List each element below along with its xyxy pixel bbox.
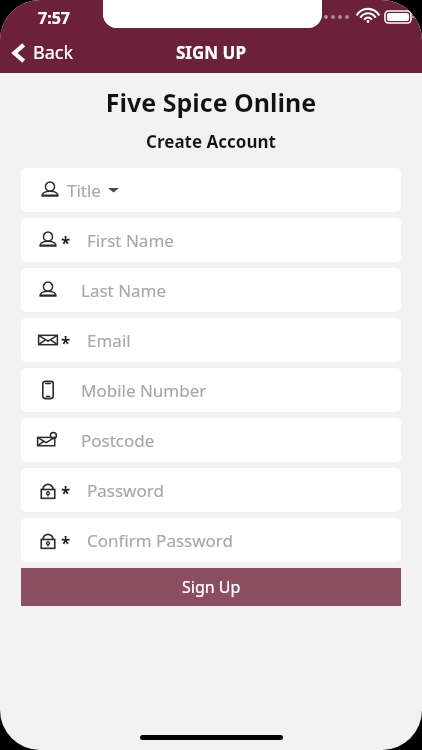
staticText: * — [61, 482, 71, 505]
button[interactable]: Mobile Number — [21, 368, 401, 412]
button[interactable]: * — [21, 218, 401, 262]
staticText: Email — [87, 329, 131, 352]
button[interactable]: Back — [8, 38, 78, 67]
button[interactable]: Title — [21, 168, 401, 212]
staticText: Last Name — [81, 279, 167, 302]
staticText: First Name — [87, 229, 174, 252]
staticText: * — [61, 232, 71, 255]
button[interactable]: * — [21, 318, 401, 362]
staticText: * — [61, 532, 71, 555]
staticText: Mobile Number — [81, 379, 207, 402]
staticText: Back — [33, 40, 74, 65]
staticText: Sign Up — [182, 576, 241, 598]
button[interactable]: Sign Up — [21, 568, 401, 606]
staticText: SIGN UP — [176, 41, 246, 64]
staticText: Create Account — [0, 130, 422, 153]
staticText: Five Spice Online — [0, 85, 422, 119]
button[interactable]: * — [21, 518, 401, 562]
staticText: * — [61, 332, 71, 355]
staticText: Postcode — [81, 429, 155, 452]
staticText: 7:57 — [38, 7, 70, 29]
button[interactable]: Postcode — [21, 418, 401, 462]
button[interactable]: Last Name — [21, 268, 401, 312]
staticText: Confirm Password — [87, 529, 233, 552]
staticText: Password — [87, 479, 164, 502]
staticText: Title — [67, 179, 101, 202]
button[interactable]: * — [21, 468, 401, 512]
